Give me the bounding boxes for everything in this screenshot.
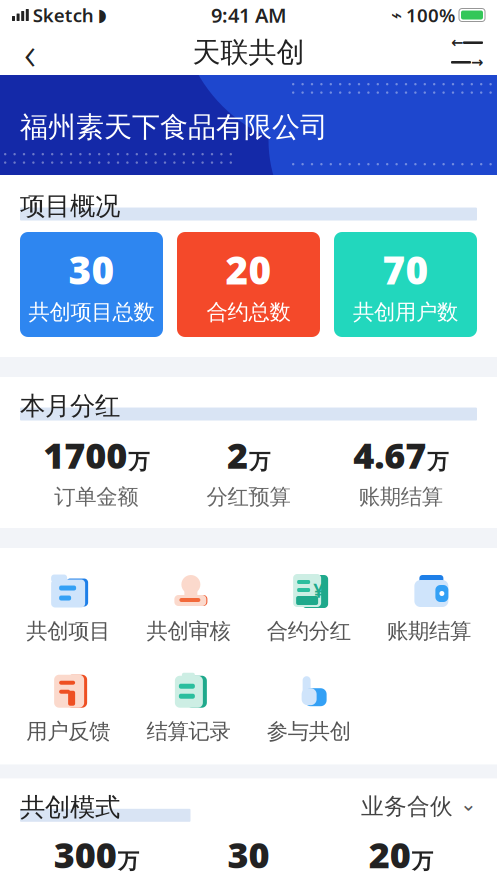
staticText: 2 <box>227 431 248 479</box>
button[interactable]: Switch company <box>445 30 489 74</box>
button[interactable]: ¥ <box>248 560 369 650</box>
button[interactable]: 账期结算 <box>369 560 489 650</box>
staticText: 共创项目 <box>26 618 110 644</box>
staticText: 用户反馈 <box>26 718 110 744</box>
staticText: ¥ <box>313 578 324 603</box>
staticText: 1700 <box>43 431 127 479</box>
staticText: 账期结算 <box>387 618 471 644</box>
staticText: 万 <box>249 449 270 475</box>
staticText: 业务合伙 <box>361 792 453 820</box>
staticText: ⌄ <box>460 792 477 815</box>
staticText: 合约分红 <box>267 618 351 644</box>
button[interactable]: 30 <box>20 232 163 337</box>
staticText: 结算记录 <box>146 718 230 744</box>
button[interactable]: 70 <box>334 232 477 337</box>
staticText: → <box>471 54 483 71</box>
staticText: 4.67 <box>353 431 426 479</box>
button[interactable]: 20 <box>177 232 320 337</box>
staticText: 福州素天下食品有限公司 <box>20 110 328 144</box>
staticText: 共创项目总数 <box>28 299 154 325</box>
staticText: 共创模式 <box>20 792 120 823</box>
staticText: 分红预算 <box>206 484 290 510</box>
staticText: 参与共创 <box>267 718 351 744</box>
staticText: 合约总数 <box>206 299 290 325</box>
staticText: ⌁ <box>391 4 402 26</box>
staticText: 共创审核 <box>146 618 230 644</box>
staticText: 万 <box>427 449 448 475</box>
button[interactable]: Back <box>8 30 52 74</box>
staticText: ← <box>451 34 463 51</box>
button[interactable]: 用户反馈 <box>8 660 128 750</box>
staticText: 万 <box>412 848 433 874</box>
staticText: 项目概况 <box>20 190 120 221</box>
staticText: 订单金额 <box>54 484 138 510</box>
staticText: 70 <box>382 244 428 295</box>
staticText: ‹ <box>24 22 36 83</box>
staticText: ◗ <box>98 5 107 25</box>
button[interactable]: 业务合伙 <box>361 792 477 820</box>
staticText: Sketch <box>33 3 94 27</box>
button[interactable]: 共创审核 <box>128 560 248 650</box>
staticText: 账期结算 <box>359 484 443 510</box>
staticText: 万 <box>128 449 149 475</box>
staticText: 万 <box>118 848 139 874</box>
button[interactable]: 参与共创 <box>248 660 369 750</box>
staticText: 9:41 AM <box>211 2 287 28</box>
staticText: 天联共创 <box>192 35 304 70</box>
staticText: 共创用户数 <box>353 299 458 325</box>
staticText: 20 <box>369 830 411 878</box>
button[interactable]: 共创项目 <box>8 560 128 650</box>
staticText: 100% <box>406 3 455 27</box>
staticText: 20 <box>225 244 271 295</box>
staticText: 本月分红 <box>20 390 120 421</box>
button[interactable]: 结算记录 <box>128 660 248 750</box>
staticText: 30 <box>227 830 269 878</box>
staticText: 30 <box>68 244 114 295</box>
staticText: 300 <box>54 830 117 878</box>
